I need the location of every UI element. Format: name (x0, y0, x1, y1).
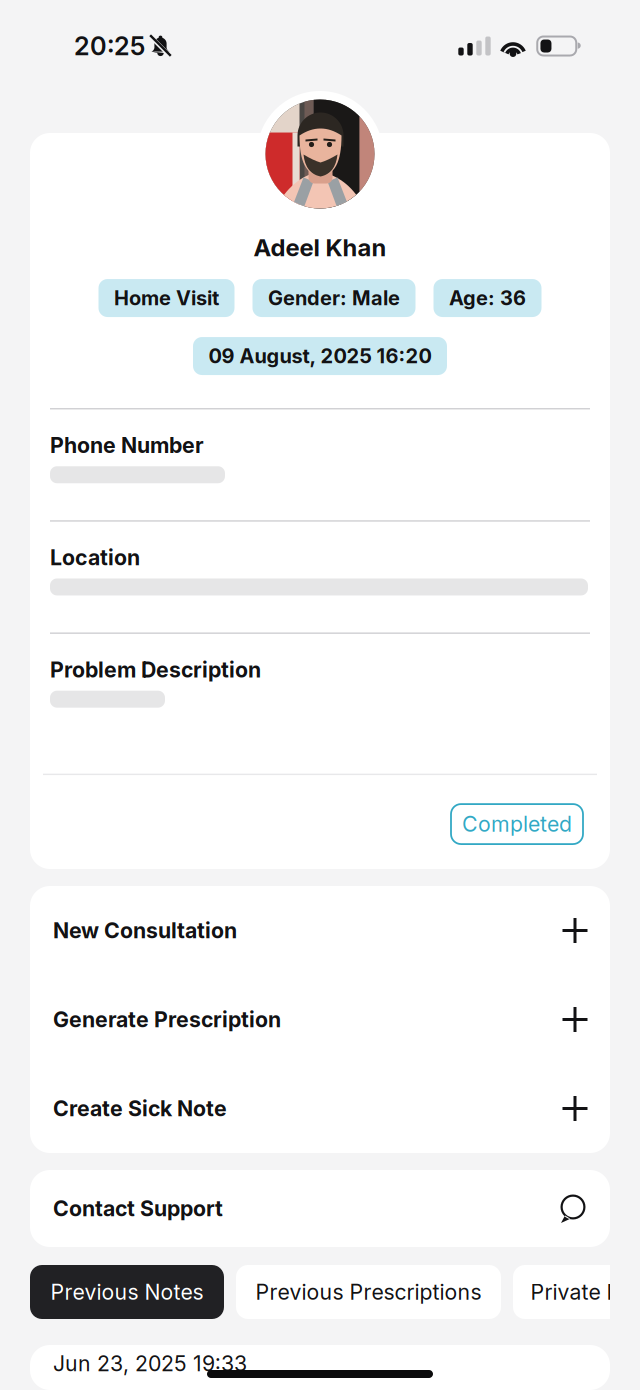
staticText: Contact Support (53, 1196, 223, 1221)
button[interactable]: Previous Prescriptions (236, 1265, 501, 1319)
staticText: Problem Description (50, 657, 261, 683)
staticText: Previous Prescriptions (255, 1279, 481, 1305)
button[interactable]: Completed (451, 804, 583, 844)
staticText: New Consultation (53, 918, 237, 943)
staticText: Generate Prescription (53, 1007, 281, 1032)
button[interactable]: New Consultation (30, 886, 610, 975)
staticText: Jun 23, 2025 19:33 (53, 1351, 247, 1376)
staticText: 20:25 (74, 31, 145, 61)
button[interactable]: Create Sick Note (30, 1064, 610, 1153)
button[interactable]: Contact Support (30, 1170, 610, 1247)
staticText: Gender: Male (268, 286, 400, 310)
staticText: Previous Notes (50, 1279, 203, 1305)
button[interactable]: Generate Prescription (30, 975, 610, 1064)
staticText: Adeel Khan (253, 233, 386, 262)
button[interactable]: Previous Notes (30, 1265, 224, 1319)
staticText: Home Visit (114, 286, 219, 310)
staticText: Age: 36 (449, 286, 526, 310)
staticText: Private Notes (530, 1279, 640, 1305)
staticText: Location (50, 545, 140, 570)
staticText: Completed (462, 811, 572, 837)
staticText: Phone Number (50, 432, 204, 458)
staticText: Create Sick Note (53, 1096, 227, 1121)
staticText: 09 August, 2025 16:20 (208, 344, 431, 368)
button[interactable]: Private Notes (513, 1265, 640, 1319)
